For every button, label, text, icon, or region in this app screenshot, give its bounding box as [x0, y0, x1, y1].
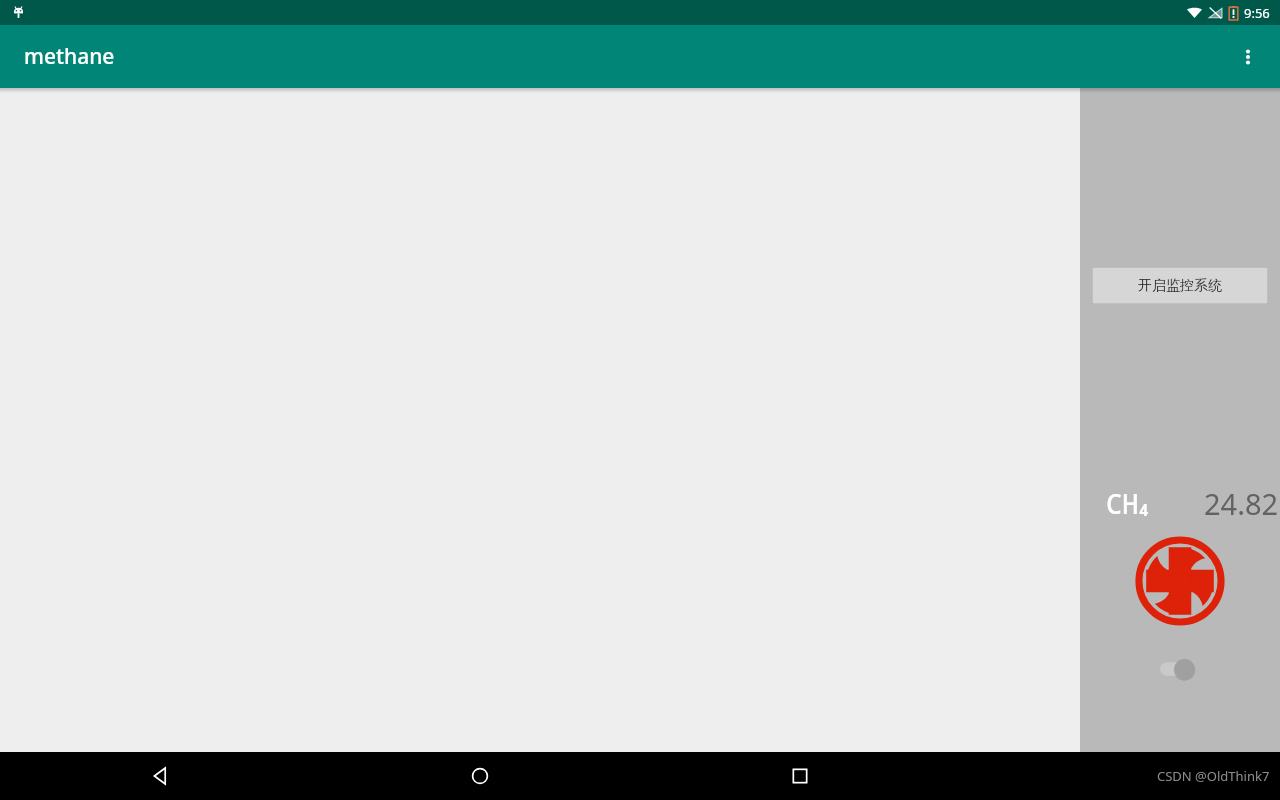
- button[interactable]: Home: [320, 752, 640, 800]
- button[interactable]: Recent apps: [640, 752, 960, 800]
- button[interactable]: Back: [0, 752, 320, 800]
- staticText: methane: [24, 42, 115, 71]
- button[interactable]: 开启监控系统: [1092, 267, 1268, 304]
- staticText: 9:56: [1244, 4, 1270, 22]
- staticText: CH: [1106, 485, 1139, 522]
- button[interactable]: Fan switch: [1152, 654, 1208, 684]
- staticText: 24.82: [1204, 484, 1279, 523]
- staticText: 4: [1139, 499, 1149, 521]
- button[interactable]: More options: [1224, 33, 1272, 81]
- staticText: CSDN @OldThink7: [1157, 767, 1270, 785]
- button[interactable]: Fan: [1131, 532, 1229, 630]
- staticText: 开启监控系统: [1138, 277, 1222, 295]
